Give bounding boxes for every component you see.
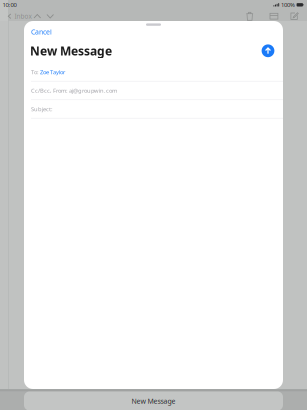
staticText: New Message [131, 396, 175, 406]
staticText: Cancel [31, 27, 52, 36]
button[interactable]: Delete [238, 9, 262, 23]
staticText: New Message [30, 43, 112, 59]
button[interactable]: Move to folder [262, 9, 286, 23]
staticText: 100% [281, 1, 295, 9]
button[interactable]: Send [260, 43, 275, 58]
staticText: Cc/Bcc, From: aj@groupwin.com [31, 87, 117, 94]
staticText: Subject: [31, 105, 53, 113]
staticText: Zoe Taylor [40, 68, 65, 76]
button[interactable]: Inbox [7, 9, 32, 23]
button[interactable]: Next message [42, 9, 58, 23]
staticText: Inbox [14, 12, 31, 20]
button[interactable]: New Message [24, 391, 283, 410]
staticText: To: [31, 68, 40, 76]
button[interactable]: New message [286, 9, 303, 23]
button[interactable]: Cancel [30, 28, 53, 36]
button[interactable]: Previous message [32, 9, 42, 23]
staticText: 10:00 [2, 1, 16, 9]
